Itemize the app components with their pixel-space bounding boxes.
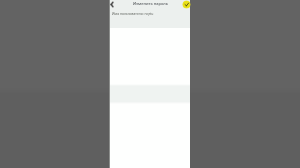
button[interactable]: Save password (182, 0, 191, 9)
staticText: Изменить пароль (133, 1, 168, 6)
staticText: Имя пользователя: nqrtu (112, 11, 154, 16)
button[interactable]: Back (110, 0, 118, 8)
